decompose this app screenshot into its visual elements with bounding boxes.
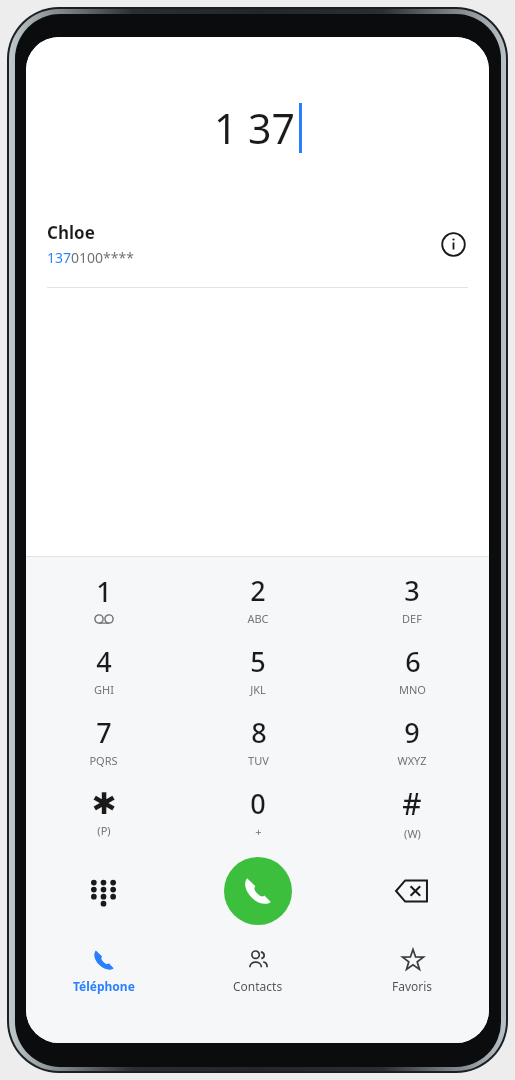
staticText: 1 [96, 573, 112, 610]
button[interactable]: # [335, 776, 489, 847]
button[interactable]: 4 [26, 634, 181, 705]
button[interactable]: 0 [181, 776, 335, 847]
button[interactable]: ✱ [26, 776, 181, 847]
staticText: Chloe [47, 221, 95, 244]
staticText: 8 [251, 714, 267, 751]
button[interactable]: Backspace [335, 847, 489, 935]
staticText: TUV [248, 753, 269, 768]
staticText: Contacts [233, 978, 283, 994]
staticText: 2 [250, 572, 266, 609]
staticText: Téléphone [73, 978, 135, 994]
staticText: ABC [247, 611, 269, 626]
staticText: MNO [399, 682, 426, 697]
staticText: 1 37 [214, 100, 296, 156]
button[interactable]: Contacts [181, 935, 335, 1007]
button[interactable]: 7 [26, 705, 181, 776]
button[interactable]: Chloe [26, 213, 489, 275]
staticText: 0 [250, 785, 266, 822]
staticText: + [255, 824, 262, 839]
button[interactable]: Téléphone [26, 935, 181, 1007]
button[interactable]: Favoris [335, 935, 489, 1007]
staticText: DEF [402, 611, 422, 626]
button[interactable]: 6 [335, 634, 489, 705]
staticText: PQRS [89, 753, 118, 768]
button[interactable]: 3 [335, 563, 489, 634]
staticText: Favoris [392, 978, 433, 994]
staticText: 7 [96, 714, 112, 751]
button[interactable]: Contact details [431, 222, 475, 266]
button[interactable]: 5 [181, 634, 335, 705]
button[interactable]: 1 [26, 563, 181, 634]
staticText: JKL [250, 682, 266, 697]
staticText: ✱ [91, 786, 117, 821]
staticText: 3 [404, 572, 420, 609]
staticText: 1370100**** [47, 248, 134, 267]
button[interactable]: 8 [181, 705, 335, 776]
button[interactable]: Hide keypad [26, 847, 181, 935]
staticText: 4 [96, 643, 112, 680]
staticText: WXYZ [397, 753, 427, 768]
staticText: 6 [405, 643, 421, 680]
staticText: 9 [404, 714, 420, 751]
staticText: 5 [250, 643, 266, 680]
staticText: (P) [97, 823, 111, 838]
button[interactable]: 2 [181, 563, 335, 634]
button[interactable]: 9 [335, 705, 489, 776]
staticText: (W) [404, 826, 421, 841]
staticText: GHI [94, 682, 114, 697]
button[interactable]: Call [224, 857, 292, 925]
staticText: # [402, 783, 422, 824]
